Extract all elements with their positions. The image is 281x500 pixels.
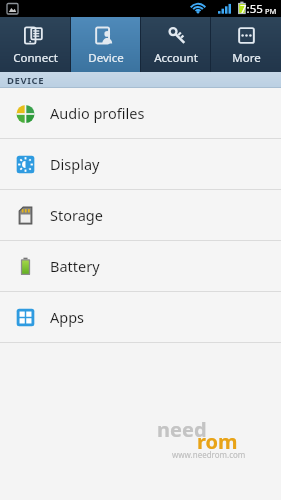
staticText: Storage xyxy=(50,205,103,225)
staticText: rom xyxy=(197,428,238,455)
staticText: Battery xyxy=(50,256,100,276)
button[interactable]: Display xyxy=(0,139,281,189)
staticText: Display xyxy=(50,154,100,174)
button[interactable]: Connect xyxy=(0,17,71,72)
button[interactable]: Apps xyxy=(0,292,281,342)
staticText: Connect xyxy=(13,50,58,66)
button[interactable]: Battery xyxy=(0,241,281,291)
button[interactable]: Account xyxy=(141,17,211,72)
staticText: More xyxy=(232,50,261,66)
staticText: www.needrom.com xyxy=(172,449,246,460)
staticText: 7:55 xyxy=(240,1,263,17)
staticText: DEVICE xyxy=(7,74,45,87)
staticText: PM xyxy=(265,6,277,16)
button[interactable]: Storage xyxy=(0,190,281,240)
staticText: Account xyxy=(154,50,198,66)
staticText: Device xyxy=(88,50,124,66)
staticText: need xyxy=(157,416,207,443)
button[interactable]: Audio profiles xyxy=(0,88,281,138)
staticText: Apps xyxy=(50,307,85,327)
button[interactable]: More xyxy=(211,17,281,72)
staticText: Audio profiles xyxy=(50,103,145,123)
button[interactable]: Device xyxy=(71,17,141,72)
